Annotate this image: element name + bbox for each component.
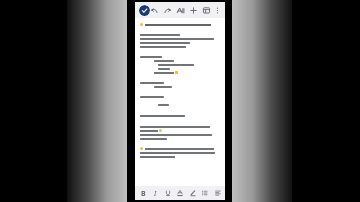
button[interactable]: Bulleted list [200,188,210,198]
button[interactable]: Comments [202,6,211,15]
button[interactable]: Insert [189,6,198,15]
button[interactable]: Undo [150,6,159,15]
button[interactable]: Underline [163,188,173,198]
staticText: B [141,189,146,197]
button[interactable]: Highlight [188,188,198,198]
button[interactable]: Text colour [175,188,185,198]
button[interactable]: Done [139,5,150,16]
staticText: I [154,189,157,197]
button[interactable]: Alignment [213,188,223,198]
button[interactable]: Format [176,6,185,15]
button[interactable]: Bold [138,188,148,198]
button[interactable]: Redo [163,6,172,15]
button[interactable]: Italic [150,188,160,198]
button[interactable]: More options [214,6,221,15]
